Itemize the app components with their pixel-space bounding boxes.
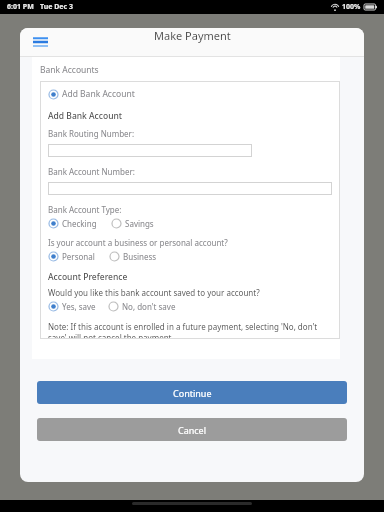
staticText: Yes, save: [62, 301, 96, 312]
staticText: Is your account a business or personal a…: [48, 237, 228, 248]
button[interactable]: Cancel: [37, 418, 347, 441]
staticText: Bank Accounts: [40, 64, 99, 76]
staticText: Add Bank Account: [62, 88, 135, 100]
staticText: Bank Account Number:: [48, 166, 135, 177]
staticText: 6:01 PM: [7, 2, 34, 12]
staticText: Account Preference: [48, 271, 128, 283]
staticText: 100%: [342, 2, 361, 12]
staticText: Savings: [125, 218, 154, 229]
button[interactable]: No, don't save: [108, 301, 176, 312]
button[interactable]: Continue: [37, 381, 347, 404]
staticText: Tue Dec 3: [40, 2, 73, 12]
staticText: Business: [123, 251, 157, 262]
staticText: No, don't save: [122, 301, 176, 312]
button[interactable]: Savings: [111, 218, 154, 229]
staticText: Personal: [62, 251, 95, 262]
button[interactable]: Text field: [48, 182, 332, 195]
staticText: Note: If this account is enrolled in a f…: [48, 321, 318, 339]
staticText: Bank Account Type:: [48, 204, 122, 215]
staticText: Checking: [62, 218, 97, 229]
staticText: Continue: [173, 387, 212, 399]
button[interactable]: Add Bank Account: [48, 88, 135, 100]
button[interactable]: Menu: [28, 31, 52, 53]
staticText: Cancel: [178, 424, 207, 436]
button[interactable]: Checking: [48, 218, 97, 229]
button[interactable]: Personal: [48, 251, 95, 262]
staticText: Would you like this bank account saved t…: [48, 287, 260, 298]
button[interactable]: Business: [109, 251, 157, 262]
staticText: Add Bank Account: [48, 110, 123, 122]
button[interactable]: Text field: [48, 144, 252, 157]
staticText: Bank Routing Number:: [48, 128, 135, 139]
staticText: Make Payment: [154, 28, 231, 43]
button[interactable]: Yes, save: [48, 301, 96, 312]
